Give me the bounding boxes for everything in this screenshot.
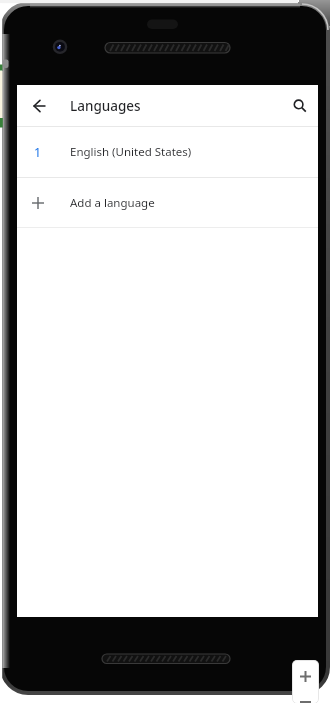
button[interactable] bbox=[286, 92, 314, 120]
button[interactable]: 1 bbox=[17, 127, 318, 177]
staticText: Languages bbox=[70, 97, 141, 115]
button[interactable] bbox=[292, 660, 319, 689]
staticText: English (United States) bbox=[70, 144, 192, 160]
staticText: Add a language bbox=[70, 195, 155, 211]
staticText: 1 bbox=[34, 144, 42, 161]
button[interactable] bbox=[292, 689, 319, 703]
button[interactable]: Add a language bbox=[17, 178, 318, 227]
button[interactable] bbox=[26, 92, 54, 120]
